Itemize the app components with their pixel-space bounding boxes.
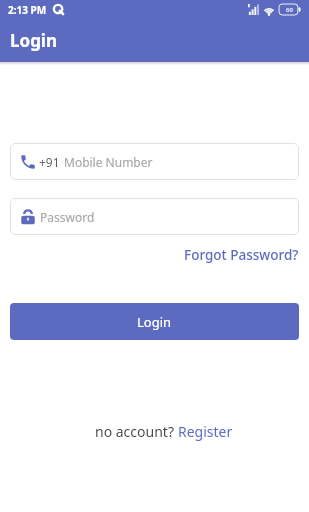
button[interactable]: Forgot Password? bbox=[184, 246, 299, 264]
button[interactable]: Register bbox=[178, 422, 233, 441]
staticText: no account? bbox=[95, 422, 178, 441]
button[interactable]: +91 bbox=[10, 143, 299, 180]
staticText: Mobile Number bbox=[64, 154, 153, 170]
staticText: Login bbox=[10, 29, 58, 52]
button[interactable]: Login bbox=[10, 303, 299, 340]
staticText: Register bbox=[178, 422, 233, 441]
staticText: Login bbox=[137, 313, 172, 331]
staticText: Forgot Password? bbox=[184, 246, 299, 264]
staticText: 2:13 PM bbox=[8, 3, 47, 17]
staticText: +91 bbox=[39, 154, 60, 170]
staticText: Password bbox=[40, 209, 95, 225]
button[interactable]: Password bbox=[10, 198, 299, 235]
staticText: 69 bbox=[286, 6, 293, 14]
